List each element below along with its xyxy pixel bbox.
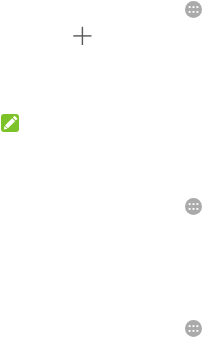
button[interactable]: Apps [185,320,202,337]
button[interactable]: Apps [185,1,202,18]
button[interactable]: Compose [1,114,19,132]
button[interactable]: Apps [185,198,202,215]
button[interactable]: Add [70,24,94,48]
